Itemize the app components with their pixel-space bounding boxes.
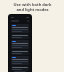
button[interactable] <box>11 50 29 55</box>
button[interactable] <box>11 56 29 65</box>
button[interactable] <box>11 34 29 39</box>
button[interactable] <box>11 66 29 71</box>
button[interactable]: Profile <box>11 20 29 22</box>
staticText: Use with both dark <box>13 2 52 7</box>
staticText: and light modes <box>16 7 49 12</box>
button[interactable] <box>11 24 29 33</box>
button[interactable] <box>11 40 29 49</box>
